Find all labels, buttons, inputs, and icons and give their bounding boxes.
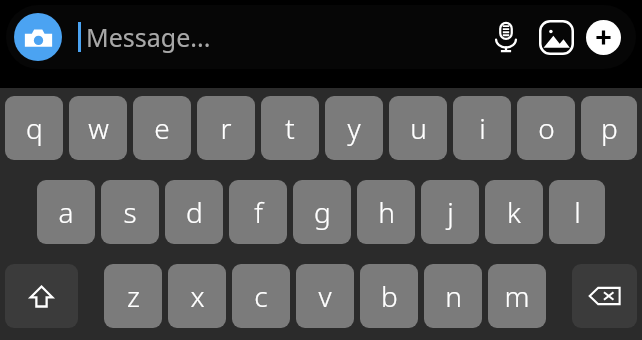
staticText: k xyxy=(507,193,521,231)
staticText: v xyxy=(318,277,332,315)
staticText: y xyxy=(347,109,361,147)
button[interactable]: t xyxy=(261,96,319,160)
button[interactable]: h xyxy=(357,180,415,244)
button[interactable]: q xyxy=(5,96,63,160)
button[interactable]: c xyxy=(232,264,290,328)
button[interactable]: e xyxy=(133,96,191,160)
button[interactable]: z xyxy=(104,264,162,328)
staticText: s xyxy=(123,193,137,231)
button[interactable]: y xyxy=(325,96,383,160)
button[interactable]: p xyxy=(581,96,637,160)
staticText: l xyxy=(574,193,581,231)
button[interactable]: Voice message xyxy=(485,16,527,58)
button[interactable]: j xyxy=(421,180,479,244)
staticText: b xyxy=(381,277,398,315)
button[interactable]: l xyxy=(549,180,605,244)
button[interactable]: Attach image xyxy=(535,16,577,58)
staticText: c xyxy=(254,277,268,315)
button[interactable]: u xyxy=(389,96,447,160)
staticText: w xyxy=(88,109,109,147)
button[interactable]: n xyxy=(424,264,482,328)
staticText: p xyxy=(601,109,618,147)
staticText: a xyxy=(58,193,74,231)
button[interactable]: o xyxy=(517,96,575,160)
button[interactable]: a xyxy=(37,180,95,244)
button[interactable]: m xyxy=(488,264,546,328)
button[interactable]: Camera xyxy=(14,13,62,61)
button[interactable]: k xyxy=(485,180,543,244)
button[interactable]: b xyxy=(360,264,418,328)
button[interactable]: w xyxy=(69,96,127,160)
staticText: f xyxy=(254,193,263,231)
staticText: o xyxy=(538,109,555,147)
staticText: x xyxy=(190,277,205,315)
button[interactable]: x xyxy=(168,264,226,328)
button[interactable]: g xyxy=(293,180,351,244)
staticText: n xyxy=(445,277,462,315)
staticText: u xyxy=(410,109,427,147)
button[interactable]: i xyxy=(453,96,511,160)
staticText: i xyxy=(479,109,486,147)
staticText: z xyxy=(127,277,140,315)
staticText: d xyxy=(186,193,203,231)
staticText: r xyxy=(220,109,232,147)
staticText: e xyxy=(154,109,170,147)
button[interactable]: s xyxy=(101,180,159,244)
staticText: q xyxy=(26,109,43,147)
button[interactable]: v xyxy=(296,264,354,328)
button[interactable]: f xyxy=(229,180,287,244)
button[interactable]: r xyxy=(197,96,255,160)
staticText: h xyxy=(378,193,395,231)
staticText: Message... xyxy=(86,20,211,54)
button[interactable]: Shift xyxy=(5,264,78,328)
staticText: m xyxy=(504,277,530,315)
staticText: t xyxy=(285,109,295,147)
staticText: g xyxy=(314,193,331,231)
button[interactable]: More options xyxy=(586,20,621,55)
button[interactable]: Backspace xyxy=(572,264,637,328)
button[interactable]: d xyxy=(165,180,223,244)
staticText: j xyxy=(447,193,454,231)
